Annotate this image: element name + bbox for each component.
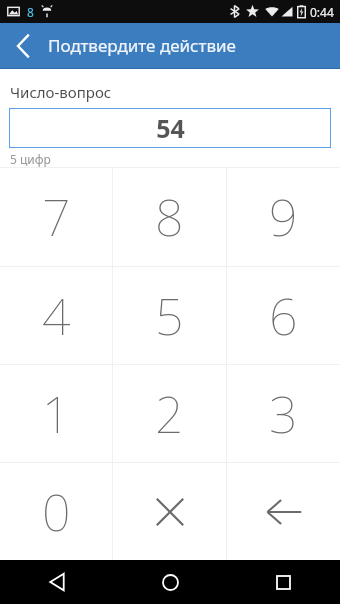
button[interactable]: 5 <box>113 267 226 364</box>
staticText: 4 <box>42 282 71 350</box>
button[interactable]: Очистить <box>113 463 226 560</box>
staticText: 7 <box>42 183 71 251</box>
button[interactable]: Назад <box>0 23 48 68</box>
button[interactable]: 7 <box>0 168 112 266</box>
staticText: 3 <box>269 380 298 448</box>
button[interactable]: 2 <box>113 365 226 462</box>
button[interactable]: 0 <box>0 463 112 560</box>
button[interactable]: 54 <box>9 108 331 148</box>
staticText: 2 <box>155 380 184 448</box>
staticText: 6 <box>269 282 298 350</box>
button[interactable]: 6 <box>227 267 340 364</box>
staticText: 54 <box>156 111 185 145</box>
staticText: 5 <box>155 282 184 350</box>
staticText: 0 <box>42 478 71 546</box>
button[interactable]: Домой <box>114 560 227 604</box>
staticText: 0:44 <box>310 4 334 20</box>
staticText: 8 <box>27 4 34 20</box>
button[interactable]: 8 <box>113 168 226 266</box>
button[interactable]: 3 <box>227 365 340 462</box>
button[interactable]: Назад <box>0 560 114 604</box>
button[interactable]: 1 <box>0 365 112 462</box>
staticText: Число-вопрос <box>10 82 112 102</box>
staticText: 1 <box>42 380 71 448</box>
staticText: 5 цифр <box>10 151 51 167</box>
button[interactable]: Обзор <box>227 560 340 604</box>
staticText: Подтвердите действие <box>48 34 236 57</box>
button[interactable]: Удалить <box>227 463 340 560</box>
staticText: 9 <box>269 183 298 251</box>
button[interactable]: 4 <box>0 267 112 364</box>
button[interactable]: 9 <box>227 168 340 266</box>
staticText: 8 <box>155 183 184 251</box>
